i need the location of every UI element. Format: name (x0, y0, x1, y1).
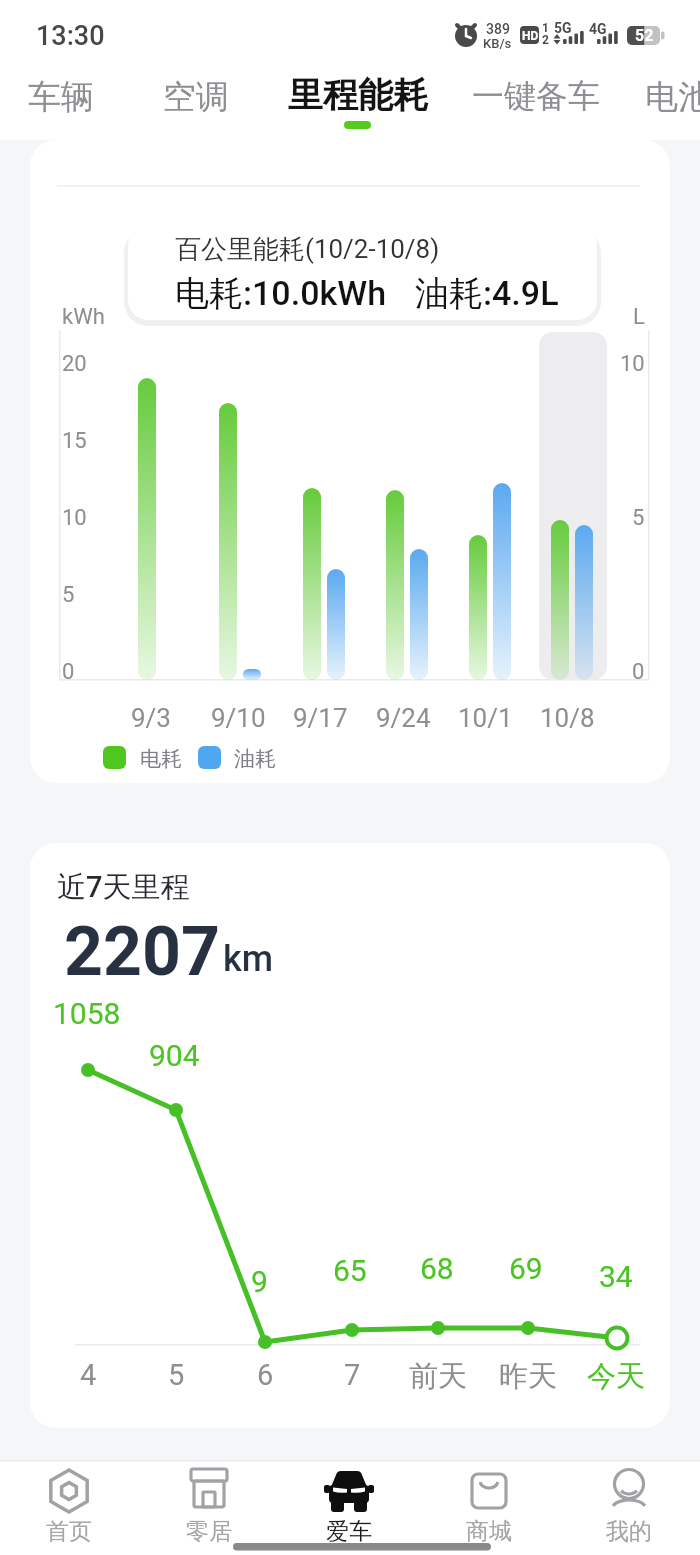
staticText: 5 (632, 505, 645, 531)
staticText: 昨天 (499, 1358, 557, 1395)
staticText: 34 (599, 1259, 633, 1294)
staticText: 15 (62, 428, 87, 454)
staticText: 近7天里程 (57, 869, 190, 906)
staticText: 10/1 (458, 703, 513, 733)
staticText: 52 (635, 26, 654, 45)
staticText: 首页 (46, 1517, 92, 1546)
staticText: 389 (486, 21, 510, 37)
staticText: 69 (509, 1251, 543, 1286)
staticText: 20 (62, 351, 87, 377)
staticText: 1 (542, 21, 549, 35)
button[interactable] (30, 843, 670, 1428)
button[interactable] (630, 62, 700, 138)
staticText: 9/3 (131, 703, 171, 733)
staticText: 油耗 (234, 746, 276, 772)
staticText: kWh (62, 304, 105, 330)
button[interactable] (145, 62, 255, 138)
button[interactable] (10, 62, 120, 138)
staticText: 2207 (64, 912, 221, 992)
button[interactable] (0, 1461, 140, 1555)
button[interactable] (420, 1461, 560, 1555)
staticText: 1058 (53, 996, 121, 1031)
staticText: km (223, 938, 274, 980)
staticText: 一键备车 (472, 76, 600, 116)
staticText: 电耗:10.0kWh (175, 272, 387, 315)
staticText: 里程能耗 (288, 73, 428, 117)
staticText: 商城 (466, 1517, 512, 1546)
staticText: 10 (620, 351, 645, 377)
staticText: HD (522, 29, 539, 43)
staticText: 7 (344, 1358, 361, 1392)
staticText: 油耗:4.9L (415, 272, 559, 315)
button[interactable] (140, 1461, 280, 1555)
staticText: 13:30 (36, 20, 105, 52)
staticText: 今天 (587, 1358, 645, 1395)
staticText: L (633, 304, 645, 330)
staticText: 电池 (645, 76, 700, 118)
staticText: 0 (632, 659, 645, 685)
button[interactable] (455, 62, 615, 138)
staticText: 空调 (163, 76, 229, 118)
staticText: 零居 (186, 1517, 232, 1546)
staticText: 4 (80, 1358, 97, 1392)
button[interactable] (270, 62, 440, 138)
staticText: KB/s (483, 36, 512, 51)
staticText: 5 (168, 1358, 185, 1392)
staticText: 电耗 (140, 746, 182, 772)
staticText: 9/24 (376, 703, 431, 733)
staticText: 车辆 (28, 76, 94, 118)
staticText: 0 (62, 659, 75, 685)
staticText: 65 (333, 1253, 367, 1288)
staticText: 10/8 (540, 703, 595, 733)
staticText: 5G (554, 20, 572, 36)
staticText: 904 (149, 1038, 200, 1073)
button[interactable] (280, 1461, 420, 1555)
staticText: 我的 (606, 1517, 652, 1546)
staticText: 5 (62, 582, 75, 608)
staticText: 4G (589, 21, 607, 37)
staticText: 9/10 (211, 703, 266, 733)
staticText: 9 (251, 1264, 268, 1299)
button[interactable] (560, 1461, 700, 1555)
button[interactable] (30, 140, 670, 783)
staticText: 爱车 (326, 1517, 372, 1546)
staticText: 前天 (409, 1358, 467, 1395)
staticText: 68 (420, 1251, 454, 1286)
staticText: 10 (62, 505, 87, 531)
staticText: 百公里能耗(10/2-10/8) (175, 233, 440, 266)
staticText: 6 (257, 1358, 274, 1392)
staticText: 2 (542, 33, 549, 47)
staticText: 9/17 (293, 703, 348, 733)
